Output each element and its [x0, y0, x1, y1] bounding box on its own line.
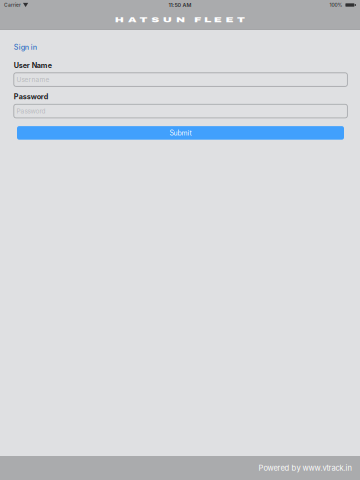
staticText: 11:50 AM — [168, 2, 191, 8]
staticText: Password — [14, 92, 49, 101]
staticText: Password — [17, 107, 46, 115]
button[interactable]: Username — [14, 73, 347, 86]
button[interactable]: Password — [14, 104, 347, 118]
staticText: Powered by www.vtrack.in — [258, 463, 351, 473]
staticText: Carrier — [4, 2, 21, 8]
button[interactable]: Submit — [17, 126, 344, 140]
staticText: Sign in — [14, 43, 37, 51]
staticText: User Name — [14, 61, 52, 70]
button[interactable]: Sign in — [14, 43, 347, 51]
staticText: Submit — [169, 129, 191, 137]
staticText: Username — [17, 76, 50, 83]
staticText: HATSUN FLEET — [140, 16, 219, 24]
staticText: 100% — [329, 2, 342, 8]
